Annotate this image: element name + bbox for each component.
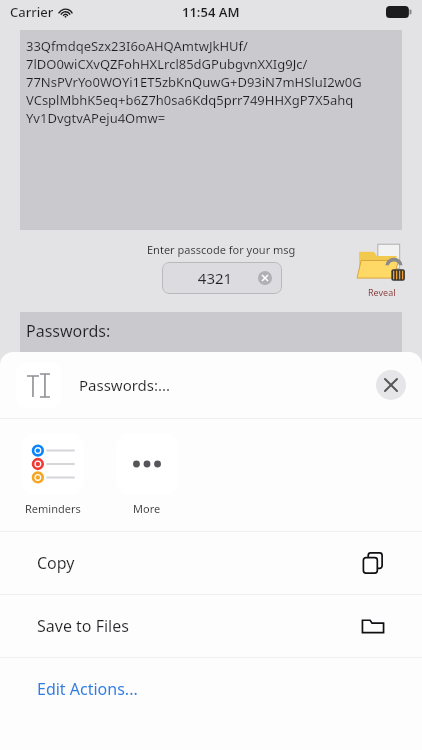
- button[interactable]: Close: [376, 370, 406, 400]
- staticText: 11:54 AM: [182, 3, 240, 21]
- button[interactable]: Copy: [0, 532, 422, 594]
- button[interactable]: Save to Files: [0, 595, 422, 657]
- staticText: More: [133, 501, 161, 516]
- staticText: Reveal: [368, 286, 396, 298]
- staticText: 77NsPVrYo0WOYi1ET5zbKnQuwG+D93iN7mHSluI2…: [26, 73, 362, 91]
- staticText: Copy: [37, 552, 361, 574]
- staticText: Passwords:...: [79, 375, 376, 395]
- staticText: VCsplMbhK5eq+b6Z7h0sa6Kdq5prr749HHXgP7X5…: [26, 91, 354, 109]
- staticText: 7lDO0wiCXvQZFohHXLrcl85dGPubgvnXXIg9Jc/: [26, 55, 308, 73]
- button[interactable]: Clear: [258, 271, 272, 285]
- staticText: Passwords:: [26, 320, 111, 342]
- button[interactable]: More: [116, 433, 178, 516]
- button[interactable]: Reveal: [356, 242, 408, 298]
- button[interactable]: 4321: [162, 262, 282, 294]
- staticText: 4321: [172, 268, 258, 288]
- staticText: Edit Actions...: [37, 678, 138, 700]
- button[interactable]: Reminders: [22, 433, 84, 516]
- staticText: Enter passcode for your msg: [147, 242, 296, 257]
- button[interactable]: Edit Actions...: [0, 658, 422, 750]
- staticText: 33QfmdqeSzx23I6oAHQAmtwJkHUf/: [26, 37, 248, 55]
- staticText: Carrier: [10, 3, 54, 21]
- staticText: Reminders: [25, 501, 81, 516]
- staticText: Yv1DvgtvAPeju4Omw=: [26, 109, 166, 127]
- staticText: Save to Files: [37, 615, 361, 637]
